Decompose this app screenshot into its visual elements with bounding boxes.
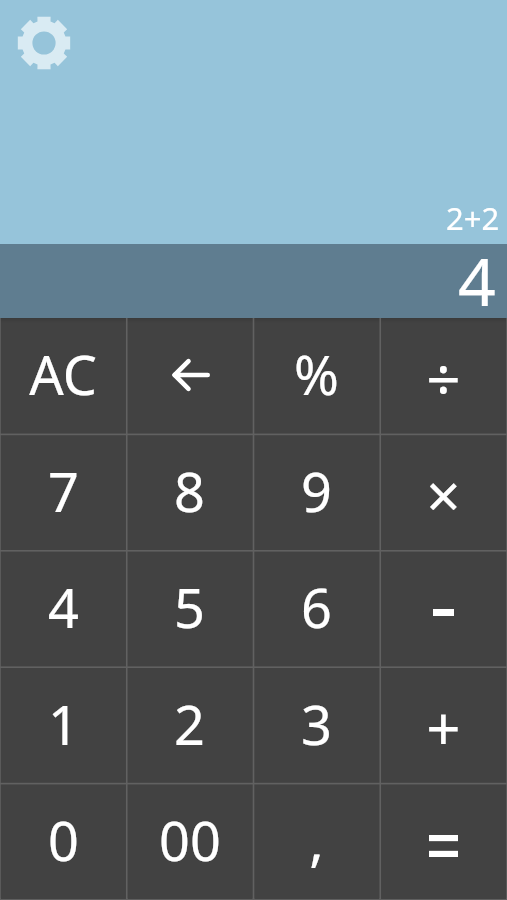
button[interactable]: 4 <box>0 550 126 666</box>
staticText: 4 <box>458 235 496 309</box>
staticText: 2 <box>174 687 205 761</box>
button[interactable]: 9 <box>253 434 380 550</box>
staticText: , <box>309 803 324 877</box>
button[interactable]: 8 <box>126 434 253 550</box>
staticText: 3 <box>301 687 332 761</box>
button[interactable]: 3 <box>253 666 380 782</box>
staticText: ÷ <box>426 337 461 419</box>
staticText: 0 <box>48 803 79 877</box>
button[interactable]: 5 <box>126 550 253 666</box>
staticText: 00 <box>159 803 221 877</box>
button[interactable]: 1 <box>0 666 126 782</box>
staticText: + <box>426 687 461 769</box>
button[interactable]: ÷ <box>380 318 507 434</box>
staticText: 4 <box>48 570 79 644</box>
button[interactable]: Equals <box>380 782 507 898</box>
button[interactable]: 2 <box>126 666 253 782</box>
button[interactable]: Settings <box>5 4 83 82</box>
staticText: 7 <box>48 454 79 528</box>
button[interactable]: 00 <box>126 782 253 898</box>
staticText: % <box>294 337 339 411</box>
button[interactable]: Backspace <box>126 318 253 434</box>
staticText: 9 <box>301 454 332 528</box>
button[interactable]: 7 <box>0 434 126 550</box>
button[interactable]: AC <box>0 318 126 434</box>
button[interactable]: Minus <box>380 550 507 666</box>
staticText: AC <box>29 337 97 411</box>
staticText: 8 <box>174 454 205 528</box>
button[interactable]: 0 <box>0 782 126 898</box>
button[interactable]: , <box>253 782 380 898</box>
staticText: × <box>426 454 461 536</box>
staticText: 1 <box>48 687 79 761</box>
button[interactable]: % <box>253 318 380 434</box>
button[interactable]: × <box>380 434 507 550</box>
staticText: 2+2 <box>446 197 500 239</box>
button[interactable]: + <box>380 666 507 782</box>
button[interactable]: 6 <box>253 550 380 666</box>
staticText: 6 <box>301 570 332 644</box>
staticText: 5 <box>174 570 205 644</box>
